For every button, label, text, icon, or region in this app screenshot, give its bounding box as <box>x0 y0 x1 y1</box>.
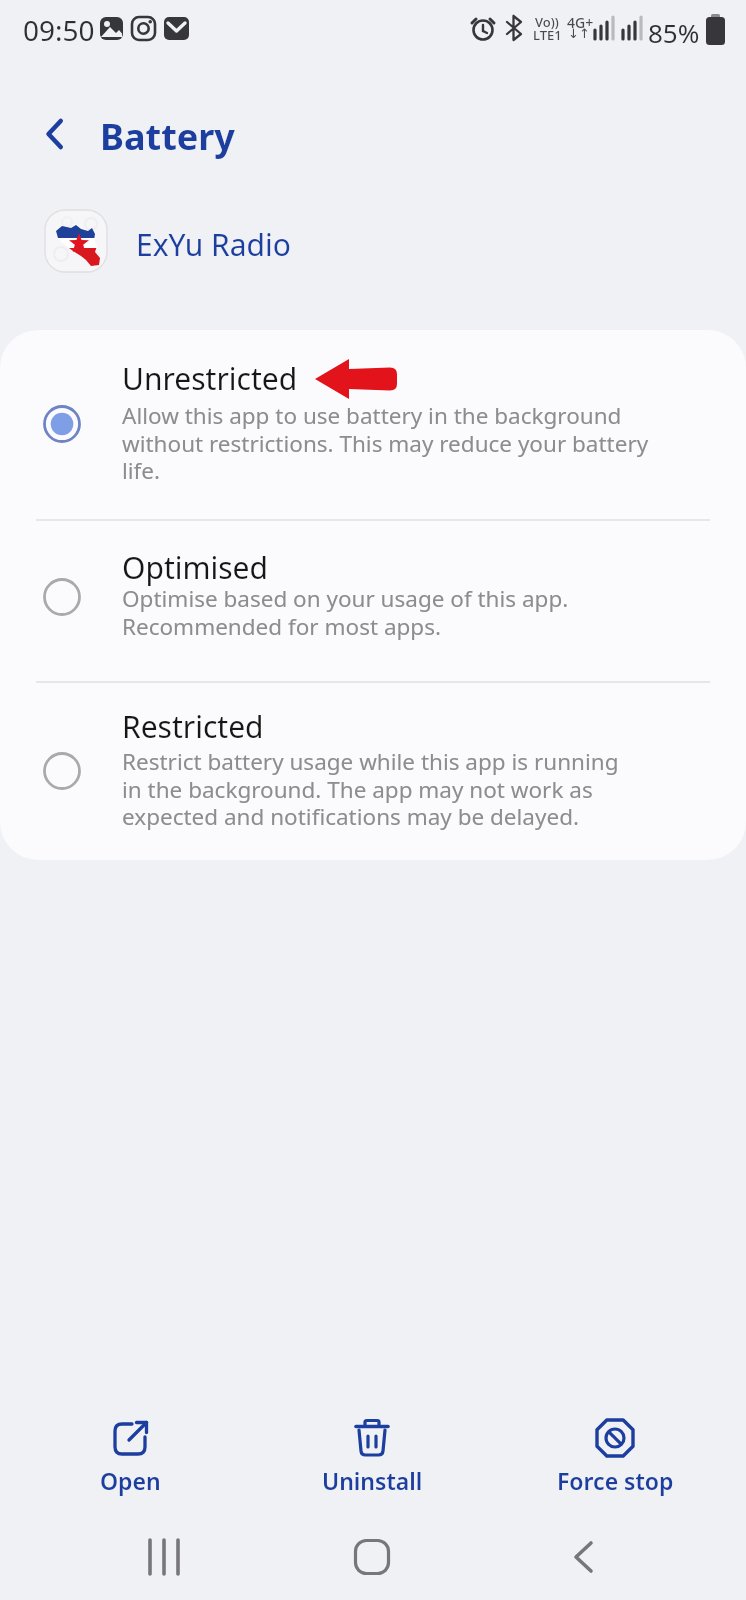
staticText: ExYu Radio <box>136 224 291 265</box>
staticText: Force stop <box>557 1465 674 1496</box>
button[interactable] <box>328 1522 416 1592</box>
staticText: Restricted <box>122 706 264 747</box>
staticText: Restrict battery usage while this app is… <box>122 746 619 831</box>
button[interactable]: Uninstall <box>297 1408 447 1508</box>
staticText: 4G+ <box>567 13 594 32</box>
staticText: Unrestricted <box>122 358 298 399</box>
staticText: Battery <box>100 112 235 161</box>
button[interactable]: Optimised <box>0 519 746 681</box>
staticText: Open <box>100 1465 161 1496</box>
button[interactable]: Open <box>55 1408 205 1508</box>
staticText: Uninstall <box>322 1465 423 1496</box>
staticText: Optimised <box>122 547 268 588</box>
button[interactable]: Restricted <box>0 681 746 860</box>
button[interactable] <box>120 1522 208 1592</box>
button[interactable] <box>540 1522 628 1592</box>
button[interactable]: Force stop <box>530 1408 700 1508</box>
staticText: 85% <box>648 15 700 50</box>
staticText: LTE1 <box>533 26 562 44</box>
staticText: Vo)) <box>535 13 559 31</box>
staticText: 09:50 <box>23 11 95 49</box>
staticText: Allow this app to use battery in the bac… <box>122 400 649 485</box>
button[interactable] <box>28 107 82 161</box>
button[interactable]: Unrestricted <box>0 340 746 519</box>
staticText: Optimise based on your usage of this app… <box>122 583 569 641</box>
staticText: ↓↑ <box>568 26 590 41</box>
